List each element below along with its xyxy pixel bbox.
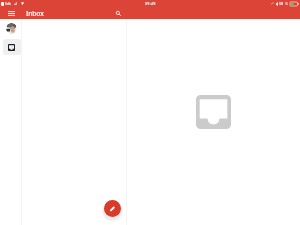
button[interactable]: Compose <box>104 200 121 217</box>
button[interactable]: Inbox <box>3 39 21 55</box>
button[interactable]: Account <box>6 23 17 34</box>
button[interactable]: Search <box>112 7 125 19</box>
staticText: Inbox <box>26 9 44 18</box>
staticText: 58 <box>279 1 284 6</box>
staticText: % <box>285 1 288 6</box>
button[interactable]: Navigation menu <box>0 7 22 19</box>
staticText: 09:49 <box>145 1 156 6</box>
staticText: Sdk <box>5 1 11 6</box>
